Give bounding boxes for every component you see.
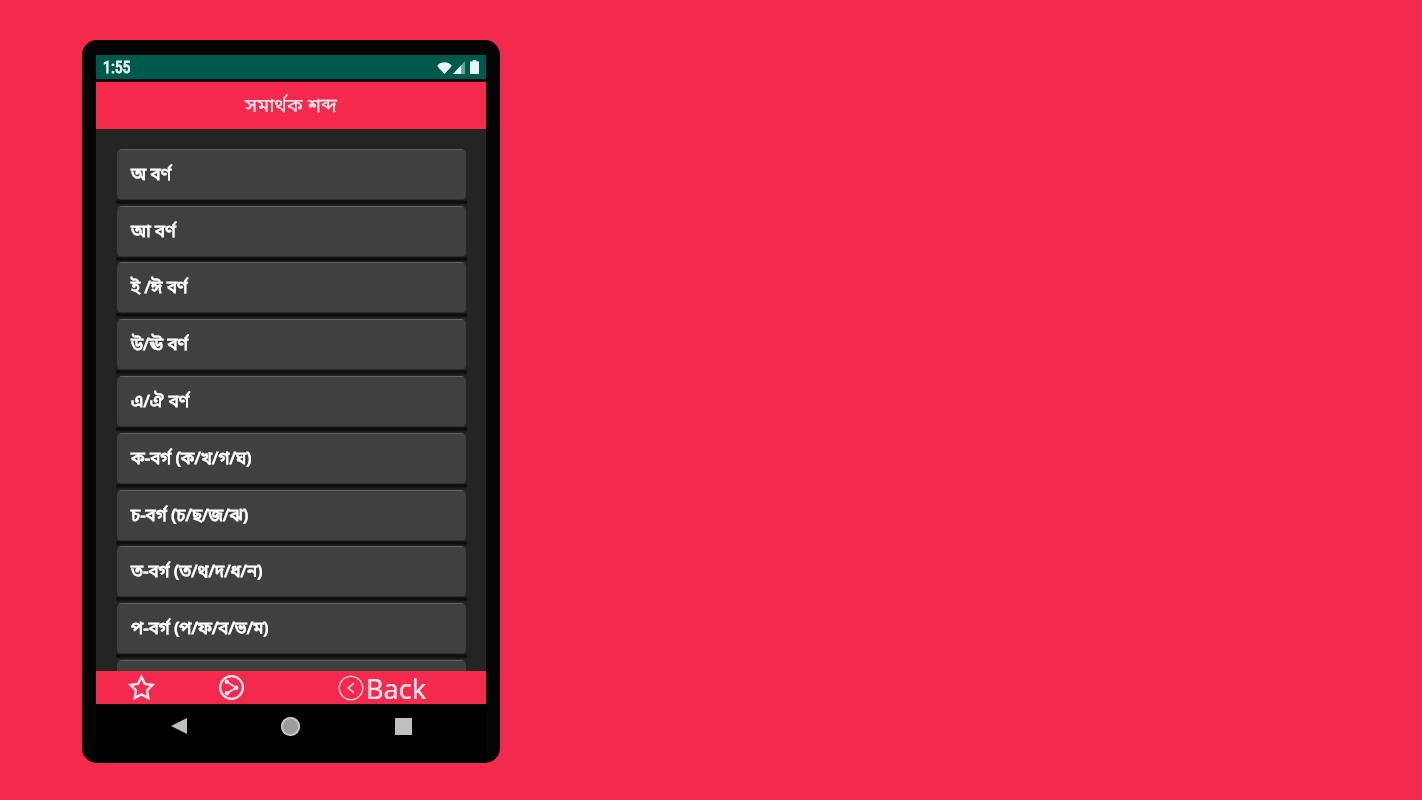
- staticText: ই /ঈ বর্ণ: [131, 277, 188, 300]
- staticText: উ/ঊ বর্ণ: [131, 334, 189, 357]
- button[interactable]: প-বর্গ (প/ফ/ব/ভ/ম): [117, 603, 466, 654]
- button[interactable]: ক-বর্গ (ক/খ/গ/ঘ): [117, 433, 466, 484]
- staticText: ত-বর্গ (ত/থ/দ/ধ/ন): [131, 561, 263, 584]
- button[interactable]: Share: [187, 671, 276, 704]
- button[interactable]: ত-বর্গ (ত/থ/দ/ধ/ন): [117, 546, 466, 597]
- button[interactable]: Back: [276, 671, 486, 704]
- staticText: ক-বর্গ (ক/খ/গ/ঘ): [131, 448, 252, 471]
- staticText: আ বর্ণ: [131, 221, 176, 244]
- button[interactable]: আ বর্ণ: [117, 206, 466, 257]
- staticText: এ/ঐ বর্ণ: [131, 391, 190, 414]
- button[interactable]: এ/ঐ বর্ণ: [117, 376, 466, 427]
- button[interactable]: ই /ঈ বর্ণ: [117, 262, 466, 313]
- staticText: Back: [366, 670, 427, 703]
- button[interactable]: Home: [281, 717, 300, 736]
- button[interactable]: য-বর্গ (য/র/ল/শ): [117, 660, 466, 711]
- button[interactable]: উ/ঊ বর্ণ: [117, 319, 466, 370]
- staticText: প-বর্গ (প/ফ/ব/ভ/ম): [131, 618, 269, 641]
- button[interactable]: Favourite: [96, 671, 187, 704]
- button[interactable]: চ-বর্গ (চ/ছ/জ/ঝ): [117, 490, 466, 541]
- staticText: 1:55: [103, 58, 131, 77]
- staticText: চ-বর্গ (চ/ছ/জ/ঝ): [131, 505, 249, 528]
- staticText: অ বর্ণ: [131, 164, 172, 187]
- staticText: সমার্থক শব্দ: [245, 94, 337, 120]
- button[interactable]: Back: [171, 718, 187, 734]
- button[interactable]: অ বর্ণ: [117, 149, 466, 200]
- staticText: য-বর্গ (য/র/ল/শ): [131, 675, 247, 698]
